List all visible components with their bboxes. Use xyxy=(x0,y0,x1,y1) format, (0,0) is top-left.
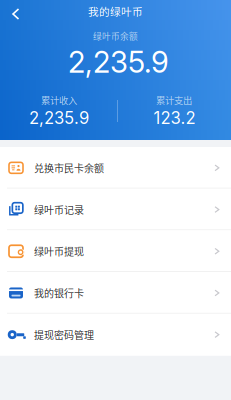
staticText: 我的银行卡 xyxy=(34,286,84,300)
staticText: 绿叶币记录 xyxy=(34,202,84,217)
staticText: 累计收入 xyxy=(41,93,77,107)
staticText: 123.2 xyxy=(153,108,195,128)
staticText: 绿叶币余额 xyxy=(93,30,138,42)
button[interactable]: 绿叶币记录 xyxy=(0,189,231,230)
staticText: 绿叶币提现 xyxy=(34,244,84,258)
staticText: 兑换市民卡余额 xyxy=(34,161,104,175)
button[interactable]: 我的银行卡 xyxy=(0,272,231,314)
staticText: 我的绿叶币 xyxy=(88,3,143,19)
staticText: 2,235.9 xyxy=(68,44,169,80)
staticText: 提现密码管理 xyxy=(34,327,94,342)
staticText: 累计支出 xyxy=(156,93,192,107)
button[interactable]: 提现密码管理 xyxy=(0,314,231,355)
button[interactable]: 兑换市民卡余额 xyxy=(0,147,231,189)
button[interactable]: Back xyxy=(0,2,32,26)
button[interactable]: 绿叶币提现 xyxy=(0,230,231,272)
staticText: 2,235.9 xyxy=(29,108,89,128)
